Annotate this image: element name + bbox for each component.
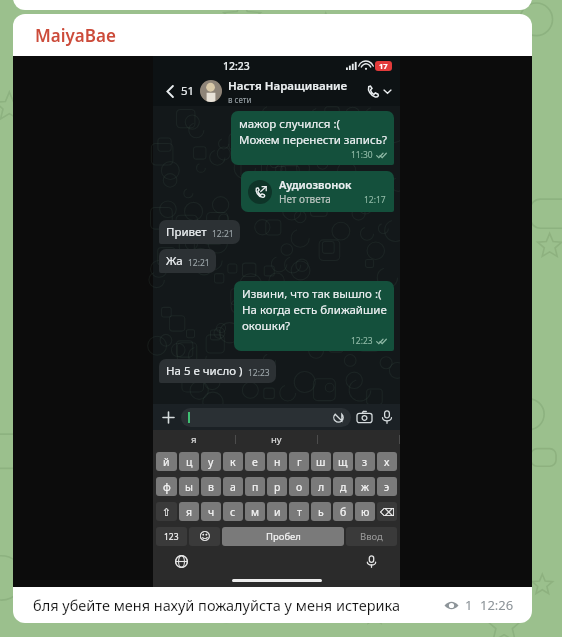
button[interactable]: у xyxy=(201,452,221,471)
staticText: 1 xyxy=(465,596,473,614)
button[interactable]: ы xyxy=(179,477,199,496)
button[interactable]: Call xyxy=(363,81,394,102)
staticText: я xyxy=(186,505,193,519)
staticText: т xyxy=(297,505,302,519)
staticText: в сети xyxy=(228,94,252,105)
staticText: 12:23 xyxy=(223,59,250,73)
button[interactable]: я xyxy=(153,430,235,449)
button[interactable]: Back xyxy=(159,80,181,102)
button[interactable]: Change language xyxy=(175,555,188,568)
button[interactable]: э xyxy=(377,477,397,496)
button[interactable]: Voice input xyxy=(365,555,378,568)
staticText: о xyxy=(296,480,303,494)
staticText: Жа xyxy=(166,253,183,269)
button[interactable]: мажор случился :( xyxy=(231,111,394,165)
staticText: 11:30 xyxy=(351,149,373,161)
button[interactable]: Stickers xyxy=(181,408,351,427)
staticText: 51 xyxy=(181,83,195,99)
button[interactable]: ☺ xyxy=(189,527,220,546)
staticText: Нет ответа xyxy=(279,192,331,206)
button[interactable]: ну xyxy=(236,430,317,449)
staticText: Ввод xyxy=(360,530,383,543)
button[interactable]: в xyxy=(201,477,221,496)
button[interactable]: з xyxy=(355,452,375,471)
other: Views xyxy=(444,598,459,613)
staticText: бля убейте меня нахуй пожалуйста у меня … xyxy=(33,595,400,615)
button[interactable]: х xyxy=(377,452,397,471)
staticText: у xyxy=(208,455,214,469)
button[interactable]: Camera xyxy=(357,410,372,425)
button[interactable]: Привет xyxy=(159,220,240,244)
button[interactable]: р xyxy=(267,477,287,496)
staticText: я xyxy=(191,433,197,446)
button[interactable]: ч xyxy=(201,502,221,521)
staticText: л xyxy=(318,480,325,494)
staticText: б xyxy=(340,505,347,519)
button[interactable]: б xyxy=(333,502,353,521)
button[interactable]: к xyxy=(223,452,243,471)
button[interactable]: ⌫ xyxy=(377,502,397,521)
staticText: ц xyxy=(186,455,193,469)
staticText: Пробел xyxy=(266,530,301,543)
staticText: ⇧ xyxy=(162,506,171,518)
button[interactable]: м xyxy=(245,502,265,521)
staticText: н xyxy=(274,455,281,469)
staticText: 12:23 xyxy=(351,335,373,347)
button[interactable]: г xyxy=(289,452,309,471)
staticText: э xyxy=(384,480,390,494)
button[interactable]: н xyxy=(267,452,287,471)
button[interactable]: бля убейте меня нахуй пожалуйста у меня … xyxy=(13,587,532,623)
button[interactable]: Извини, что так вышло :( xyxy=(234,281,394,351)
staticText: ч xyxy=(208,505,215,519)
button[interactable]: д xyxy=(333,477,353,496)
staticText: Можем перенести запись? xyxy=(239,132,387,148)
staticText: 12:21 xyxy=(212,228,234,240)
button[interactable]: е xyxy=(245,452,265,471)
button[interactable]: Ввод xyxy=(346,527,397,546)
button[interactable]: Voice message xyxy=(380,410,394,424)
staticText: ш xyxy=(316,455,326,469)
button[interactable]: щ xyxy=(333,452,353,471)
staticText: к xyxy=(230,455,236,469)
button[interactable]: й xyxy=(156,452,177,471)
button[interactable]: ц xyxy=(179,452,199,471)
staticText: ю xyxy=(361,505,370,519)
staticText: 12:21 xyxy=(188,257,210,269)
staticText: ь xyxy=(318,505,324,519)
button[interactable]: ю xyxy=(355,502,375,521)
staticText: й xyxy=(163,455,170,469)
staticText: 17 xyxy=(379,61,388,71)
button[interactable]: и xyxy=(267,502,287,521)
button[interactable]: MaiyaBae xyxy=(13,14,532,56)
button[interactable]: л xyxy=(311,477,331,496)
staticText: Привет xyxy=(166,224,207,240)
staticText: а xyxy=(230,480,236,494)
button[interactable]: с xyxy=(223,502,243,521)
button[interactable] xyxy=(200,80,222,102)
button[interactable]: Жа xyxy=(159,249,216,273)
button[interactable]: п xyxy=(245,477,265,496)
staticText: На когда есть ближайшие xyxy=(242,302,387,318)
button[interactable]: я xyxy=(179,502,199,521)
staticText: ы xyxy=(185,480,193,494)
button[interactable]: На 5 е число ) xyxy=(159,359,276,383)
staticText: ж xyxy=(361,480,369,494)
staticText: мажор случился :( xyxy=(239,116,340,132)
button[interactable]: о xyxy=(289,477,309,496)
button[interactable]: т xyxy=(289,502,309,521)
button[interactable]: ф xyxy=(156,477,177,496)
button[interactable]: Attach xyxy=(159,408,177,426)
button[interactable]: ш xyxy=(311,452,331,471)
staticText: 12:23 xyxy=(248,367,270,379)
button[interactable]: а xyxy=(223,477,243,496)
staticText: п xyxy=(252,480,259,494)
button[interactable]: ж xyxy=(355,477,375,496)
button[interactable]: Пробел xyxy=(222,527,344,546)
staticText: ф xyxy=(163,480,171,494)
staticText: щ xyxy=(338,455,348,469)
button[interactable]: Аудиозвонок xyxy=(241,171,394,212)
button[interactable]: 123 xyxy=(156,527,187,546)
button[interactable]: ь xyxy=(311,502,331,521)
button[interactable]: ⇧ xyxy=(156,502,177,521)
